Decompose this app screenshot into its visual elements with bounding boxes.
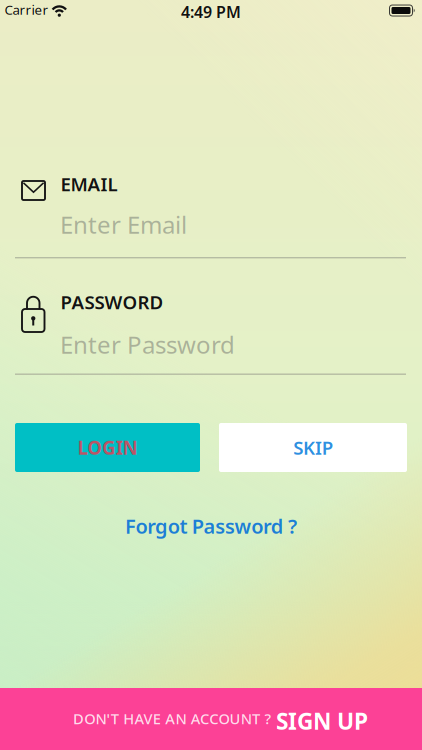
staticText: SIGN UP — [276, 706, 368, 736]
button[interactable]: SKIP — [219, 423, 407, 472]
button[interactable]: DON'T HAVE AN ACCOUNT ? — [0, 688, 422, 750]
button[interactable]: Forgot Password ? — [125, 513, 297, 539]
button[interactable]: LOGIN — [15, 423, 200, 472]
staticText: 4:49 PM — [181, 1, 241, 22]
staticText: SKIP — [293, 435, 333, 460]
staticText: Enter Password — [60, 328, 235, 360]
staticText: EMAIL — [60, 171, 117, 196]
staticText: LOGIN — [77, 435, 138, 460]
staticText: Enter Email — [60, 208, 187, 240]
staticText: Carrier — [4, 1, 48, 18]
staticText: PASSWORD — [60, 289, 163, 314]
staticText: Forgot Password ? — [125, 513, 297, 539]
staticText: DON'T HAVE AN ACCOUNT ? — [73, 709, 271, 728]
